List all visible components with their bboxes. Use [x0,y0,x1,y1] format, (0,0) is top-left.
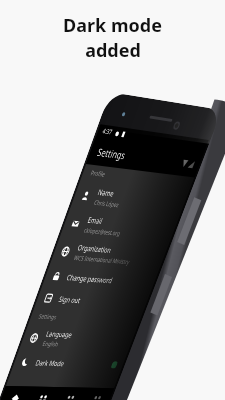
button[interactable]: Language [3,256,177,287]
button[interactable]: Name [3,95,177,126]
button[interactable]: Events [89,328,133,356]
staticText: WCS International Ministry [36,174,124,184]
staticText: Dark mode [63,13,162,38]
staticText: Sign out [36,220,70,232]
staticText: Dark Mode [36,294,81,306]
staticText: added [85,38,141,63]
staticText: cklopez@test.org [36,143,93,153]
staticText: Language [36,260,76,272]
staticText: Change password [36,195,108,207]
button[interactable]: Organization [3,157,177,188]
button[interactable]: Sign out [3,213,177,238]
button[interactable]: Home [3,328,46,356]
button[interactable]: More [133,328,177,356]
staticText: English [36,273,60,283]
button[interactable]: Dark Mode [3,287,177,312]
button[interactable]: Groups [46,328,89,356]
staticText: Organization [36,161,88,173]
button[interactable]: Change password [3,188,177,213]
button[interactable]: Email [3,126,177,157]
